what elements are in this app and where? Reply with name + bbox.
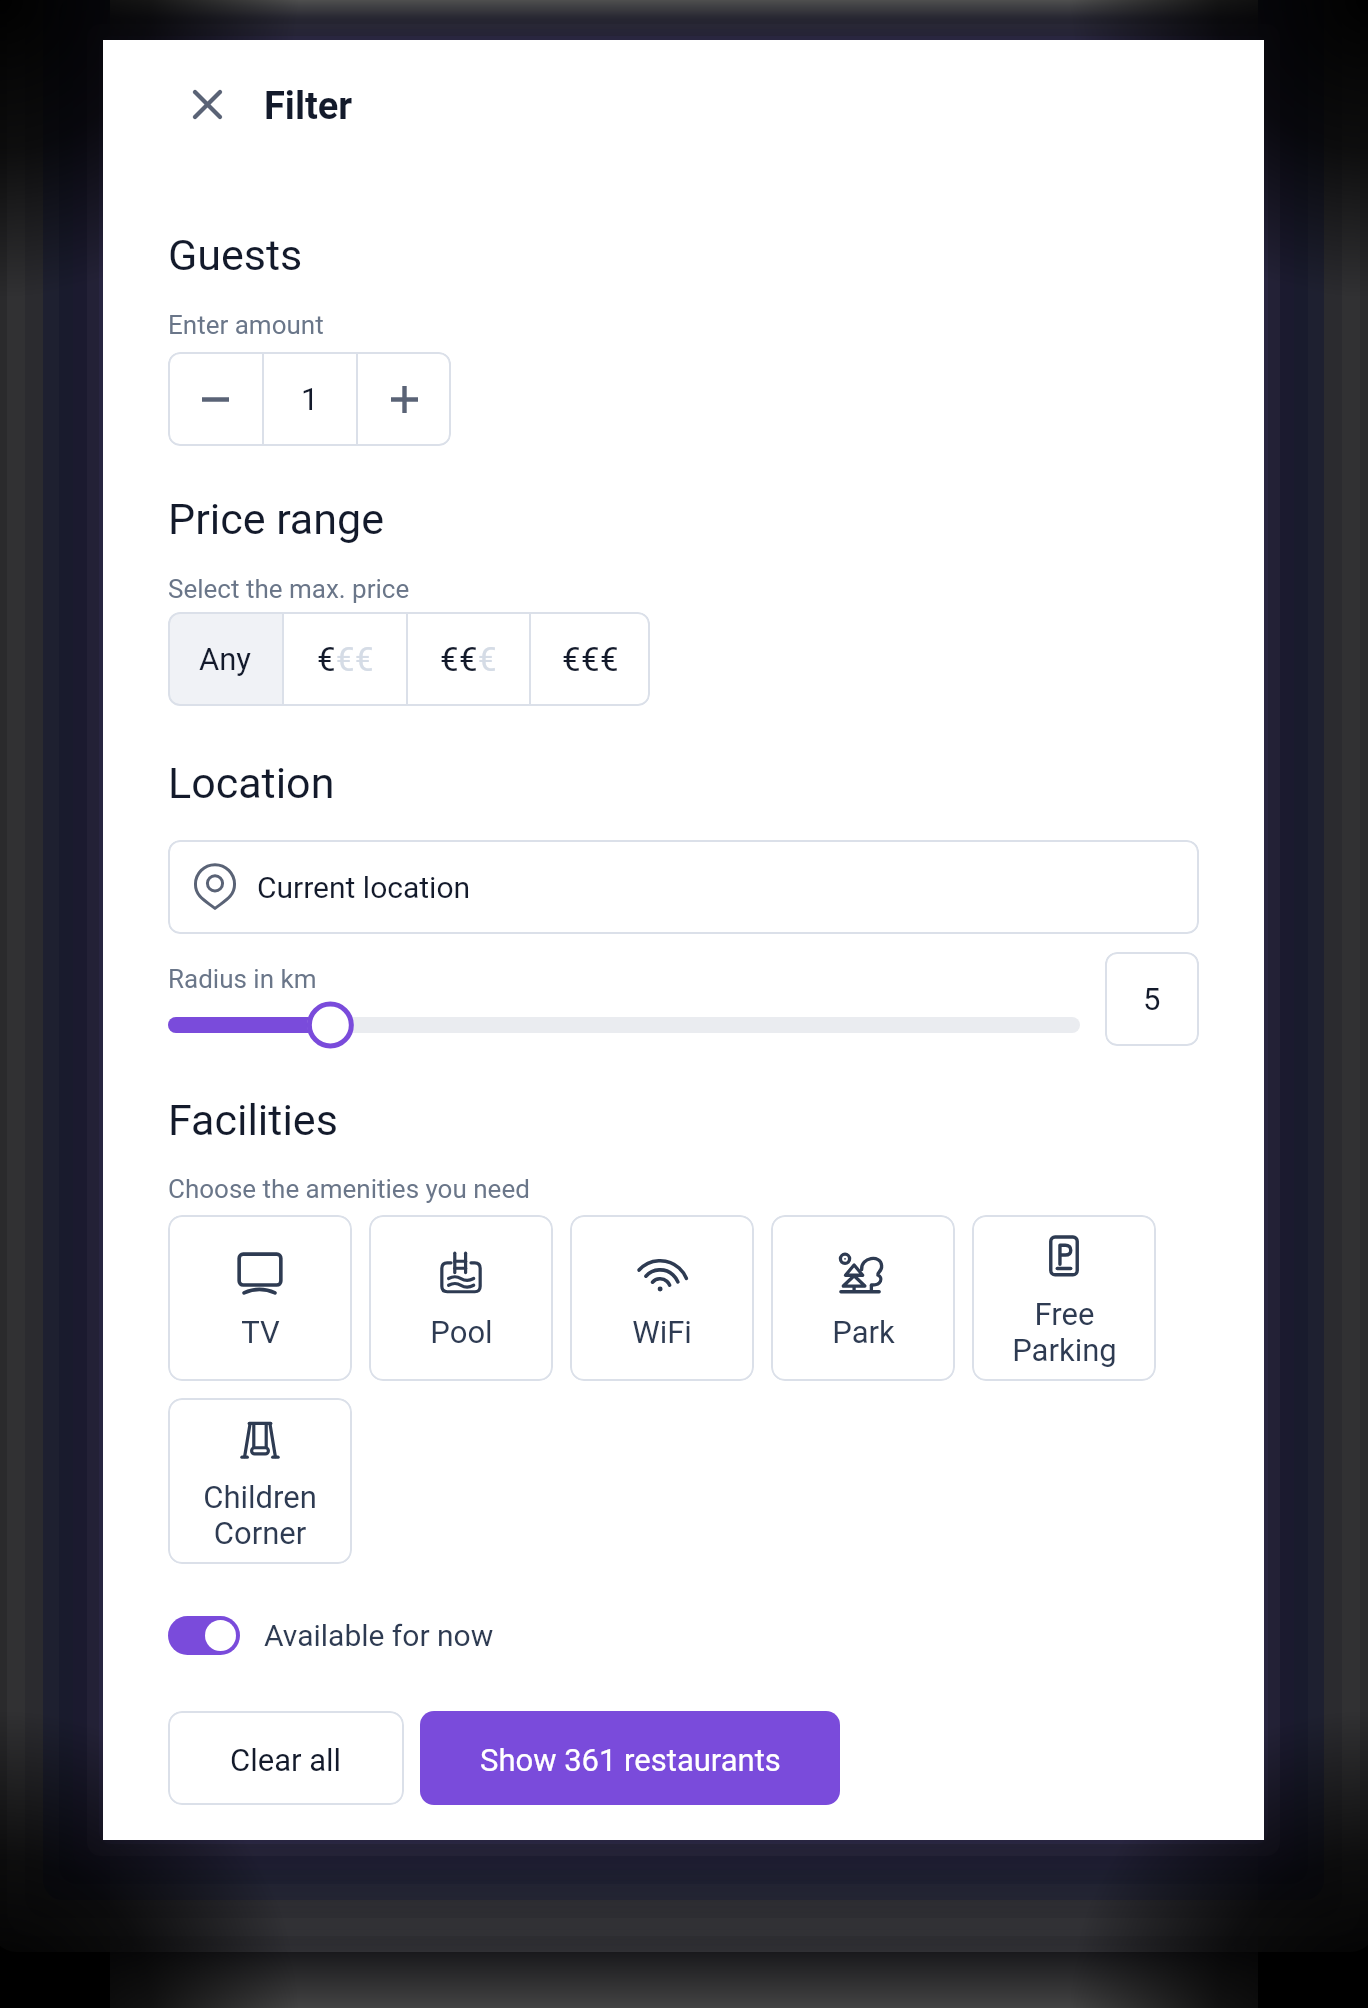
- staticText: WiFi: [632, 1314, 692, 1350]
- staticText: €: [562, 640, 581, 679]
- staticText: Enter amount: [168, 310, 324, 340]
- button[interactable]: Free Parking: [972, 1215, 1156, 1381]
- button[interactable]: 5: [1105, 952, 1199, 1046]
- button[interactable]: Show 361 restaurants: [420, 1711, 840, 1805]
- button[interactable]: TV: [168, 1215, 352, 1381]
- staticText: Filter: [264, 84, 353, 129]
- staticText: 5: [1143, 981, 1161, 1017]
- staticText: Radius in km: [168, 964, 317, 994]
- button[interactable]: WiFi: [570, 1215, 754, 1381]
- button[interactable]: Pool: [369, 1215, 553, 1381]
- staticText: €: [600, 640, 619, 679]
- staticText: €: [478, 640, 497, 679]
- staticText: €: [317, 640, 336, 679]
- button[interactable]: Clear all: [168, 1711, 404, 1805]
- staticText: Location: [168, 758, 335, 808]
- staticText: TV: [241, 1314, 280, 1350]
- button[interactable]: Close: [167, 64, 247, 144]
- staticText: Choose the amenities you need: [168, 1174, 530, 1204]
- button[interactable]: Available for now: [168, 1616, 494, 1655]
- staticText: €: [581, 640, 600, 679]
- button[interactable]: Radius in km slider: [168, 993, 1080, 1057]
- staticText: Free Parking: [1012, 1296, 1117, 1368]
- staticText: Facilities: [168, 1095, 338, 1145]
- staticText: Select the max. price: [168, 574, 410, 604]
- button[interactable]: Price level ${i + 1}: [531, 612, 650, 706]
- staticText: Available for now: [264, 1618, 494, 1653]
- staticText: Show 361 restaurants: [480, 1742, 781, 1778]
- button[interactable]: Park: [771, 1215, 955, 1381]
- staticText: 1: [301, 381, 319, 417]
- button[interactable]: Increase guests: [358, 352, 451, 446]
- staticText: Children Corner: [203, 1479, 317, 1551]
- staticText: €: [355, 640, 374, 679]
- button[interactable]: Decrease guests: [168, 352, 262, 446]
- button[interactable]: Price level ${i + 1}: [284, 612, 406, 706]
- staticText: Current location: [257, 870, 471, 905]
- button[interactable]: Children Corner: [168, 1398, 352, 1564]
- staticText: €: [440, 640, 459, 679]
- staticText: €: [336, 640, 355, 679]
- staticText: Clear all: [230, 1742, 342, 1778]
- button[interactable]: Price level ${i + 1}: [408, 612, 529, 706]
- staticText: Price range: [168, 494, 384, 544]
- staticText: €: [459, 640, 478, 679]
- button[interactable]: Current location: [168, 840, 1199, 934]
- staticText: Guests: [168, 230, 303, 280]
- button[interactable]: Any: [168, 612, 282, 706]
- staticText: Pool: [430, 1314, 493, 1350]
- staticText: Park: [832, 1314, 895, 1350]
- staticText: Any: [199, 641, 252, 677]
